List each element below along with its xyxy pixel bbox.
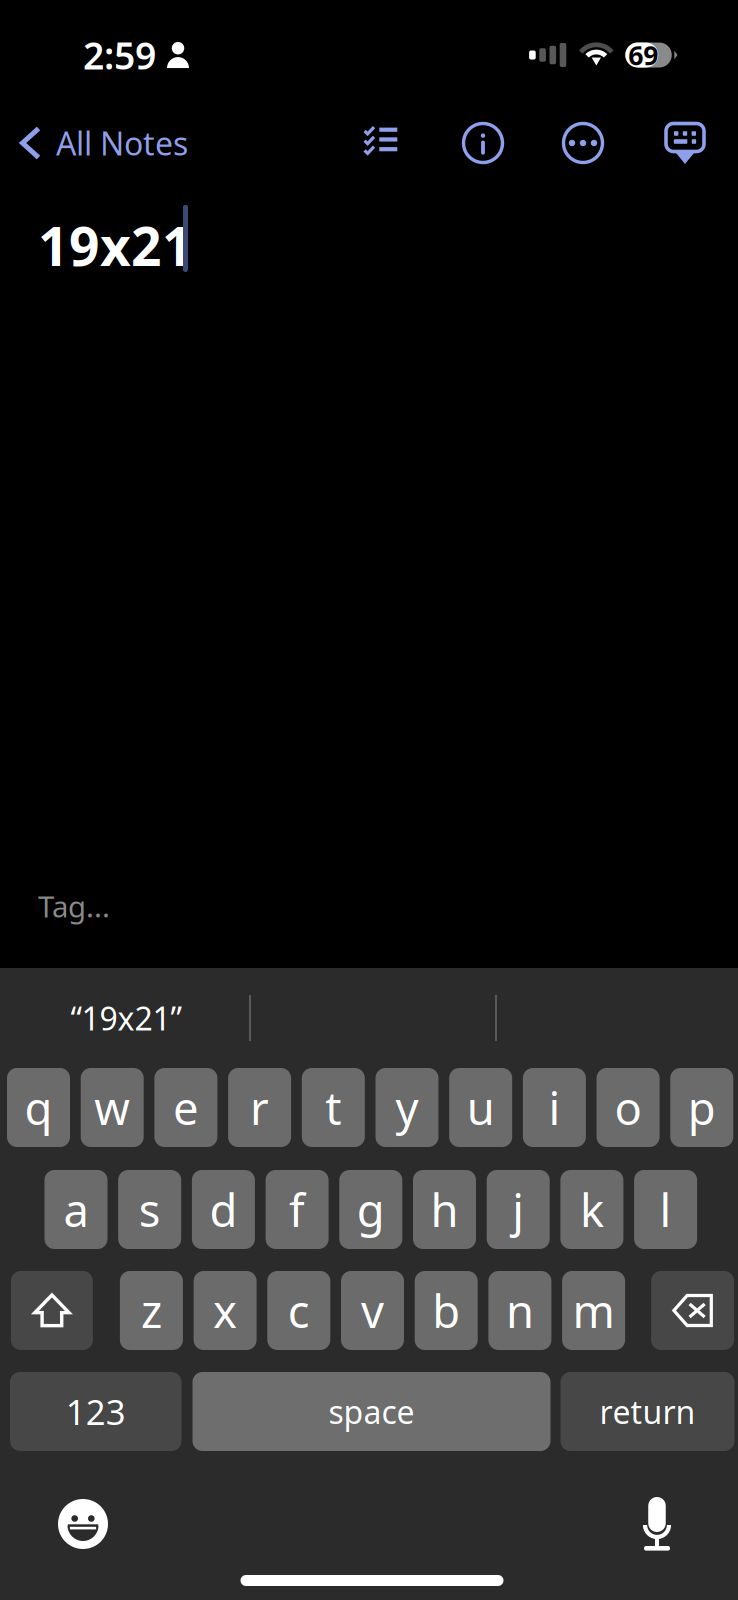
staticText: t — [325, 1077, 341, 1138]
staticText: a — [63, 1179, 88, 1240]
staticText: e — [173, 1077, 199, 1138]
button[interactable]: t — [302, 1068, 365, 1147]
staticText: k — [580, 1179, 604, 1240]
button[interactable]: g — [339, 1170, 402, 1249]
staticText: m — [573, 1280, 615, 1341]
button[interactable]: k — [560, 1170, 623, 1249]
staticText: i — [548, 1077, 560, 1138]
button[interactable]: z — [120, 1271, 183, 1350]
button[interactable]: Note Info — [452, 111, 514, 175]
button[interactable]: More Options — [552, 111, 614, 175]
button[interactable]: u — [449, 1068, 512, 1147]
staticText: All Notes — [56, 122, 188, 164]
button[interactable]: l — [634, 1170, 697, 1249]
button[interactable]: o — [597, 1068, 660, 1147]
staticText: space — [328, 1390, 414, 1433]
staticText: b — [432, 1280, 460, 1341]
button[interactable]: p — [670, 1068, 733, 1147]
button[interactable]: y — [375, 1068, 438, 1147]
staticText: y — [395, 1077, 418, 1138]
staticText: w — [94, 1077, 130, 1138]
button[interactable]: s — [118, 1170, 181, 1249]
button[interactable]: b — [415, 1271, 478, 1350]
button[interactable]: r — [228, 1068, 291, 1147]
button[interactable]: i — [523, 1068, 586, 1147]
button[interactable]: e — [154, 1068, 217, 1147]
staticText: g — [357, 1179, 385, 1240]
staticText: l — [660, 1179, 672, 1240]
staticText: r — [250, 1077, 269, 1138]
staticText: f — [289, 1179, 305, 1240]
button[interactable]: “19x21” — [3, 988, 249, 1048]
button[interactable]: f — [266, 1170, 329, 1249]
button[interactable]: return — [560, 1372, 734, 1451]
staticText: h — [430, 1179, 458, 1240]
staticText: z — [141, 1280, 162, 1341]
staticText: c — [288, 1280, 310, 1341]
button[interactable]: Emoji — [41, 1464, 125, 1548]
button[interactable]: x — [194, 1271, 257, 1350]
button[interactable]: Shift — [11, 1271, 93, 1350]
staticText: Tag... — [38, 886, 110, 925]
button[interactable]: d — [192, 1170, 255, 1249]
button[interactable]: m — [562, 1271, 625, 1350]
staticText: u — [467, 1077, 495, 1138]
staticText: q — [24, 1077, 52, 1138]
button[interactable]: Hide Keyboard — [654, 111, 716, 175]
staticText: d — [209, 1179, 237, 1240]
staticText: “19x21” — [70, 997, 181, 1039]
button[interactable]: a — [44, 1170, 107, 1249]
button[interactable]: space — [192, 1372, 550, 1451]
staticText: x — [213, 1280, 237, 1341]
button[interactable]: Checklist — [350, 111, 412, 175]
staticText: p — [688, 1077, 716, 1138]
button[interactable]: Dictation — [615, 1464, 699, 1548]
button[interactable]: j — [487, 1170, 550, 1249]
button[interactable]: 123 — [10, 1372, 181, 1451]
staticText: v — [361, 1280, 384, 1341]
button[interactable]: Tag... — [0, 878, 738, 934]
staticText: 123 — [66, 1388, 126, 1434]
button[interactable]: Delete — [651, 1271, 734, 1350]
staticText: s — [139, 1179, 161, 1240]
staticText: 2:59 — [83, 30, 156, 80]
button[interactable]: c — [267, 1271, 330, 1350]
staticText: j — [512, 1179, 524, 1240]
button[interactable]: h — [413, 1170, 476, 1249]
button[interactable]: w — [81, 1068, 144, 1147]
button[interactable]: n — [488, 1271, 551, 1350]
staticText: n — [506, 1280, 534, 1341]
button[interactable]: All Notes — [0, 111, 202, 175]
staticText: 69 — [628, 37, 658, 73]
button[interactable]: q — [7, 1068, 70, 1147]
staticText: 19x21 — [38, 210, 193, 281]
staticText: o — [615, 1077, 642, 1138]
staticText: return — [599, 1390, 695, 1433]
button[interactable]: v — [341, 1271, 404, 1350]
